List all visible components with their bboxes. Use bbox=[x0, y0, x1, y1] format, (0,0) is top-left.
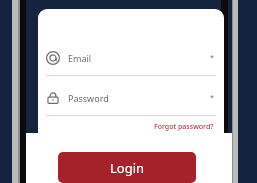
staticText: * bbox=[210, 53, 214, 63]
button[interactable]: Email bbox=[38, 46, 224, 70]
staticText: Email bbox=[68, 52, 92, 64]
other: Password bbox=[46, 91, 60, 105]
staticText: Password bbox=[68, 92, 109, 104]
staticText: * bbox=[210, 93, 214, 103]
other: Email bbox=[46, 51, 60, 65]
button[interactable]: Login bbox=[58, 152, 196, 183]
staticText: Forgot password? bbox=[154, 122, 214, 132]
button[interactable]: Forgot password? bbox=[144, 120, 224, 134]
staticText: Login bbox=[110, 159, 145, 177]
button[interactable]: Password bbox=[38, 86, 224, 110]
